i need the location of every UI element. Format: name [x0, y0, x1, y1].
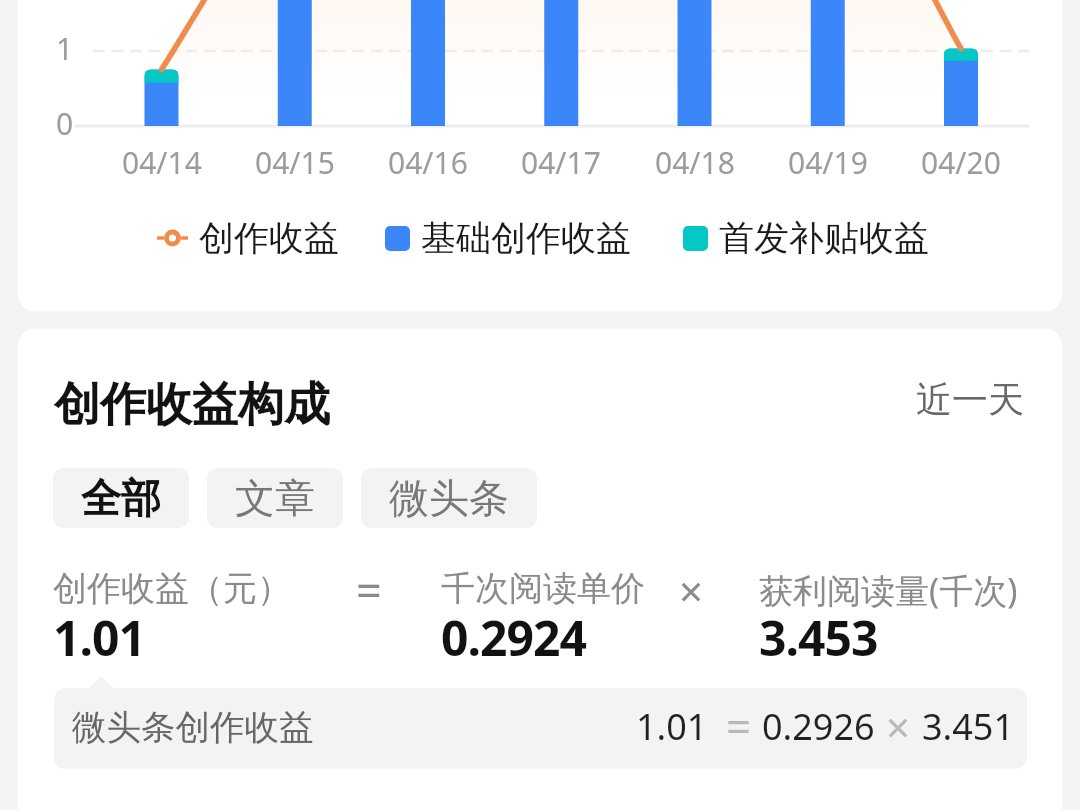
staticText: 近一天: [916, 377, 1024, 422]
staticText: 创作收益构成: [54, 376, 330, 434]
staticText: 04/20: [921, 142, 1001, 183]
button[interactable]: 文章: [207, 468, 343, 528]
staticText: 0.2924: [441, 605, 587, 670]
staticText: 04/17: [521, 142, 601, 183]
staticText: 04/14: [122, 142, 202, 183]
staticText: =: [356, 559, 382, 620]
staticText: 创作收益（元）: [53, 567, 291, 610]
staticText: 创作收益: [199, 216, 339, 260]
staticText: 获利阅读量(千次): [759, 567, 1018, 613]
staticText: 基础创作收益: [421, 216, 631, 260]
button[interactable]: 微头条: [361, 468, 537, 528]
staticText: 3.451: [922, 702, 1015, 751]
staticText: 0.2926: [762, 702, 875, 751]
staticText: 0: [56, 103, 74, 144]
staticText: 首发补贴收益: [719, 216, 929, 260]
button[interactable]: 创作收益: [157, 214, 339, 262]
staticText: =: [726, 696, 752, 756]
staticText: ×: [679, 562, 704, 619]
staticText: 04/15: [255, 142, 335, 183]
staticText: 04/19: [788, 142, 868, 183]
staticText: 1.01: [636, 702, 708, 751]
staticText: 04/16: [388, 142, 468, 183]
staticText: 微头条创作收益: [72, 706, 314, 749]
button[interactable]: 微头条创作收益: [54, 688, 1027, 769]
staticText: 1.01: [53, 605, 146, 670]
staticText: 全部: [81, 473, 161, 523]
button[interactable]: 基础创作收益: [385, 216, 631, 260]
button[interactable]: 首发补贴收益: [683, 216, 929, 260]
staticText: ×: [886, 698, 911, 755]
staticText: 3.453: [759, 605, 878, 670]
button[interactable]: 近一天: [916, 377, 1024, 422]
button[interactable]: 全部: [53, 468, 189, 528]
staticText: 1: [56, 28, 74, 69]
staticText: 04/18: [655, 142, 735, 183]
staticText: 微头条: [389, 473, 509, 523]
staticText: 文章: [235, 473, 315, 523]
staticText: 千次阅读单价: [441, 567, 645, 610]
